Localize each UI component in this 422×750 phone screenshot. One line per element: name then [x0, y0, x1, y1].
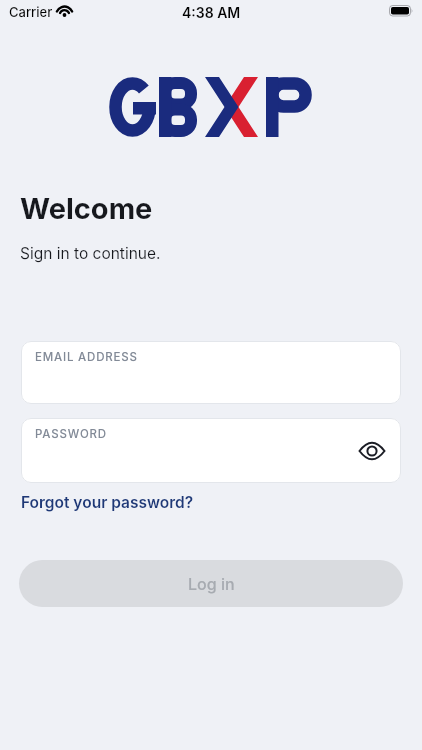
staticText: Log in [188, 574, 235, 593]
staticText: Sign in to continue. [20, 244, 161, 263]
staticText: 4:38 AM [182, 4, 241, 21]
button[interactable]: Forgot your password? [21, 493, 194, 512]
staticText: EMAIL ADDRESS [35, 350, 138, 364]
button[interactable]: EMAIL ADDRESS [21, 341, 401, 404]
button[interactable]: Log in [19, 560, 403, 607]
staticText: PASSWORD [35, 427, 107, 441]
button[interactable] [353, 432, 391, 470]
staticText: Carrier [9, 4, 53, 20]
staticText: Welcome [20, 191, 153, 226]
button[interactable]: PASSWORD [21, 418, 401, 483]
